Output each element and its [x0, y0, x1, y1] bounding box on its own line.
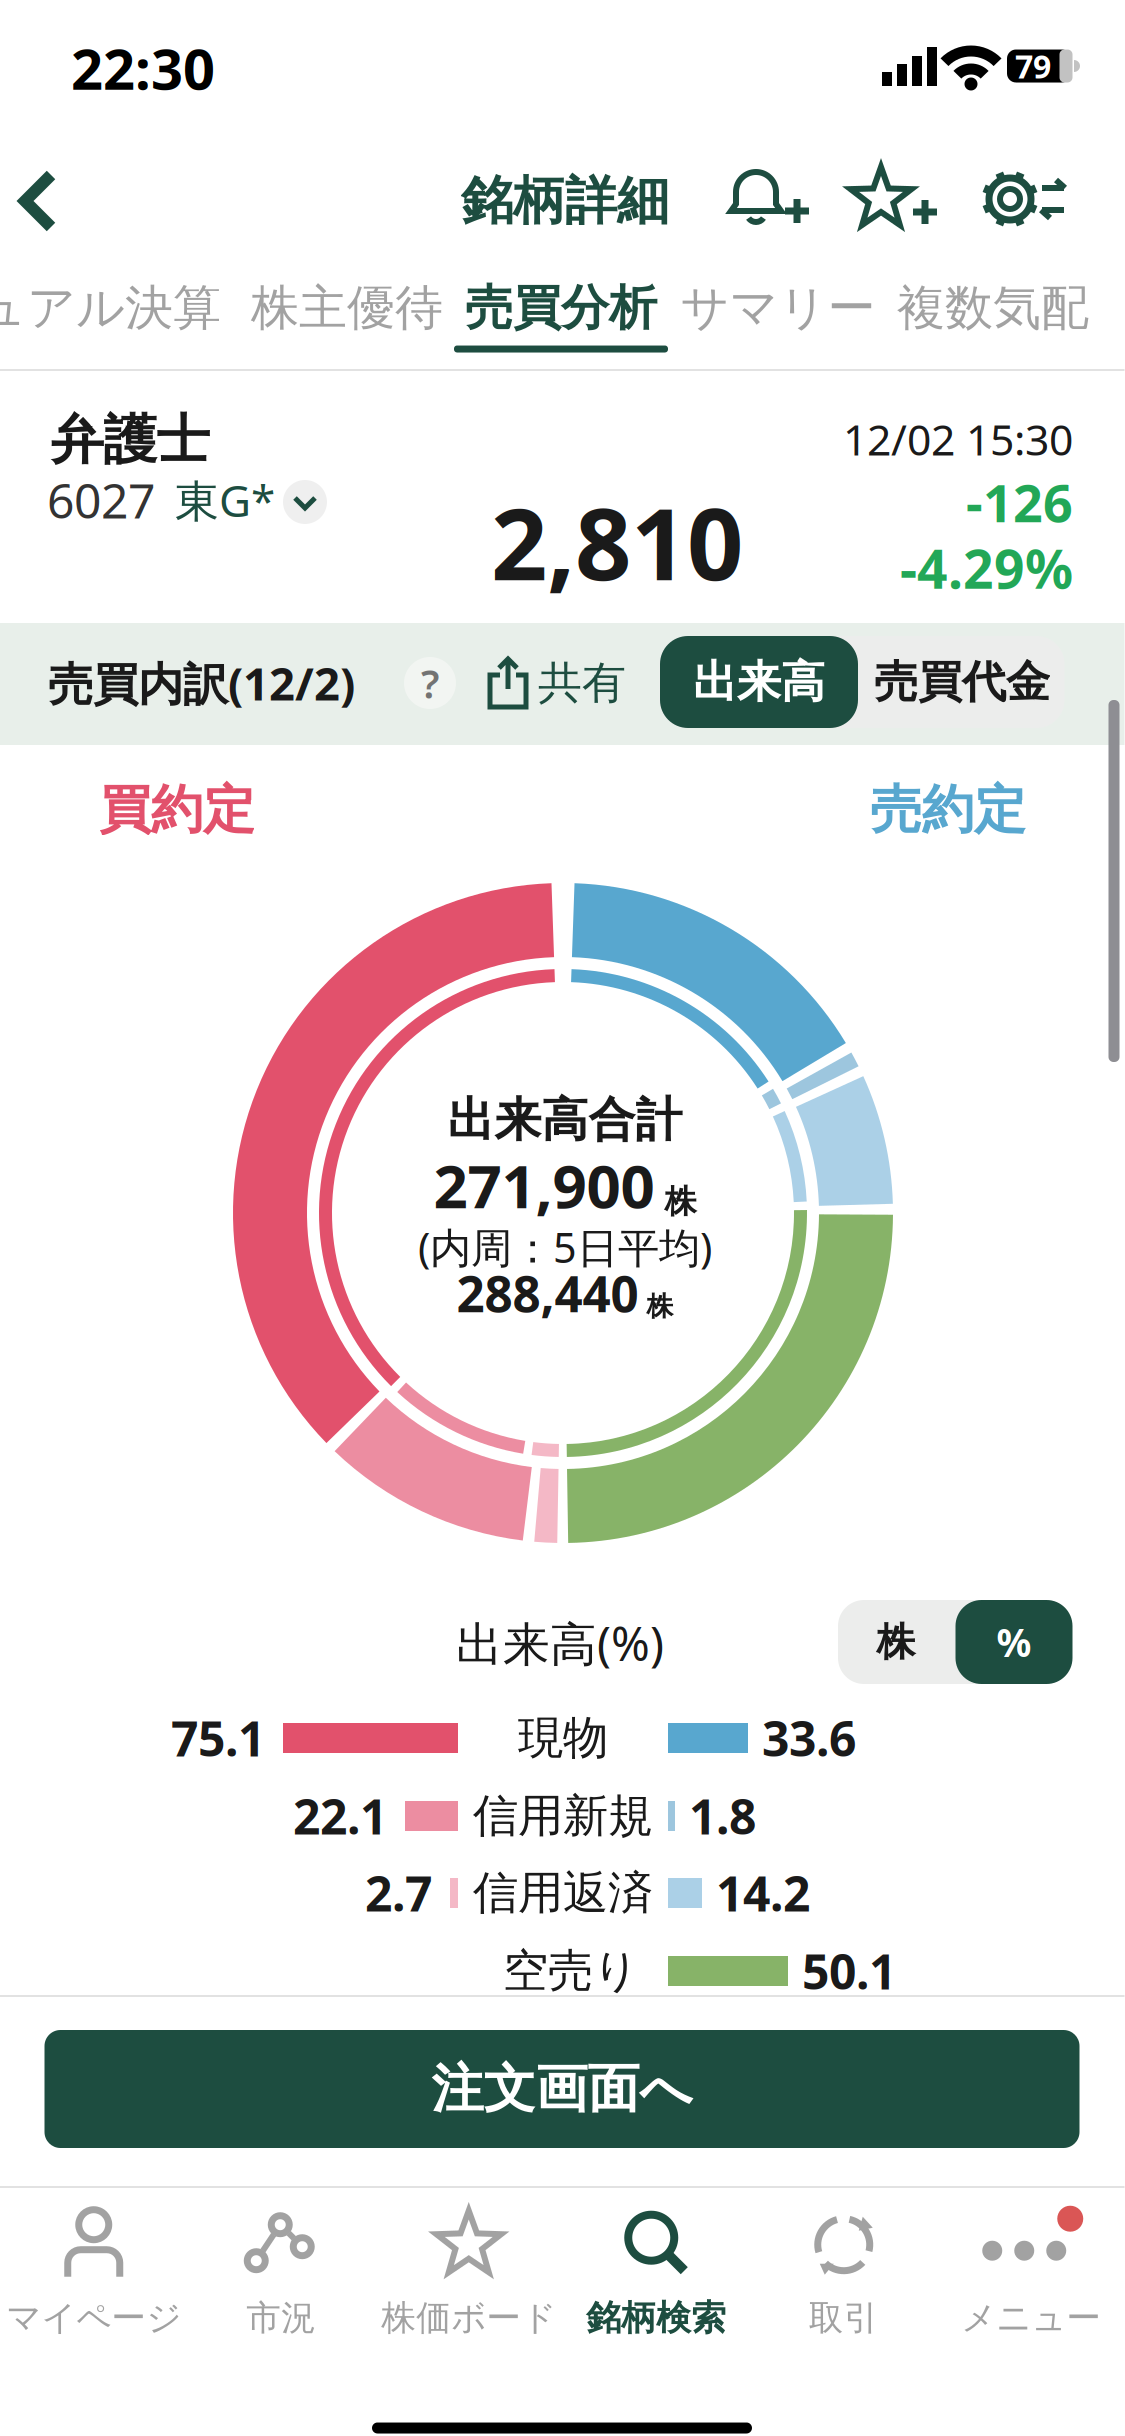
- staticText: 12/02 15:30: [843, 411, 1073, 467]
- staticText: 79: [1015, 45, 1051, 87]
- staticText: 売買分析: [465, 278, 657, 337]
- button[interactable]: 売買分析: [465, 278, 657, 337]
- staticText: 株: [876, 1618, 915, 1666]
- staticText: 東G*: [175, 471, 275, 529]
- staticText: 2.7: [365, 1861, 432, 1925]
- button[interactable]: マイページ: [0, 2197, 187, 2347]
- button[interactable]: Price alerts: [717, 161, 811, 237]
- staticText: 弁護士: [50, 407, 209, 473]
- button[interactable]: ジュアル決算: [0, 278, 221, 337]
- staticText: ジュアル決算: [0, 278, 221, 337]
- staticText: 売買内訳(12/2): [48, 653, 355, 713]
- staticText: 出来高: [693, 655, 825, 709]
- staticText: 銘柄詳細: [461, 169, 669, 233]
- button[interactable]: メニュー: [938, 2197, 1125, 2347]
- button[interactable]: Help: [404, 656, 456, 709]
- staticText: 2,810: [491, 476, 743, 607]
- button[interactable]: 売買代金: [862, 636, 1062, 728]
- staticText: メニュー: [961, 2297, 1101, 2339]
- staticText: 空売り: [503, 1943, 639, 1999]
- staticText: 現物: [518, 1710, 608, 1766]
- staticText: 注文画面へ: [431, 2057, 692, 2121]
- button[interactable]: 市況: [188, 2197, 375, 2347]
- staticText: 22:30: [71, 31, 215, 105]
- button[interactable]: Back: [17, 169, 81, 233]
- staticText: 出来高合計: [447, 1091, 682, 1149]
- staticText: 株主優待: [251, 278, 443, 337]
- button[interactable]: %: [955, 1600, 1072, 1684]
- staticText: 1.8: [689, 1784, 756, 1848]
- staticText: 株価ボード: [381, 2297, 556, 2339]
- button[interactable]: Share: [486, 655, 626, 711]
- staticText: 売約定: [870, 778, 1026, 842]
- button[interactable]: 銘柄検索: [563, 2197, 750, 2347]
- button[interactable]: 取引: [750, 2197, 937, 2347]
- staticText: 市況: [246, 2297, 316, 2339]
- staticText: (内周：5日平均): [418, 1220, 712, 1274]
- button[interactable]: 株主優待: [251, 278, 443, 337]
- staticText: 売買代金: [874, 655, 1050, 709]
- button[interactable]: 注文画面へ: [44, 2030, 1079, 2148]
- staticText: 出来高(%): [456, 1612, 664, 1674]
- button[interactable]: 出来高: [660, 636, 858, 728]
- button[interactable]: Add to watchlist: [848, 161, 938, 237]
- staticText: 信用新規: [473, 1788, 653, 1844]
- staticText: -126: [966, 467, 1073, 537]
- staticText: ?: [421, 656, 439, 709]
- button[interactable]: サマリー: [680, 278, 875, 337]
- staticText: 複数気配: [897, 278, 1089, 337]
- button[interactable]: 株価ボード: [375, 2197, 562, 2347]
- staticText: 共有: [538, 656, 626, 710]
- button[interactable]: 株: [841, 1600, 951, 1684]
- staticText: 取引: [809, 2297, 879, 2339]
- staticText: 288,440 株: [456, 1260, 673, 1326]
- button[interactable]: Expand details: [283, 480, 327, 524]
- staticText: 6027: [47, 468, 155, 532]
- staticText: 買約定: [99, 778, 255, 842]
- button[interactable]: 複数気配: [897, 278, 1089, 337]
- staticText: 75.1: [171, 1706, 265, 1770]
- staticText: 14.2: [716, 1861, 810, 1925]
- staticText: -4.29%: [900, 533, 1073, 603]
- staticText: 銘柄検索: [586, 2297, 726, 2339]
- staticText: 50.1: [802, 1939, 896, 2003]
- staticText: サマリー: [680, 278, 875, 337]
- staticText: マイページ: [6, 2297, 181, 2339]
- staticText: 信用返済: [473, 1865, 653, 1921]
- staticText: %: [996, 1616, 1031, 1668]
- staticText: 33.6: [762, 1706, 856, 1770]
- button[interactable]: Settings: [976, 161, 1068, 237]
- staticText: 271,900 株: [433, 1145, 696, 1225]
- staticText: 22.1: [293, 1784, 387, 1848]
